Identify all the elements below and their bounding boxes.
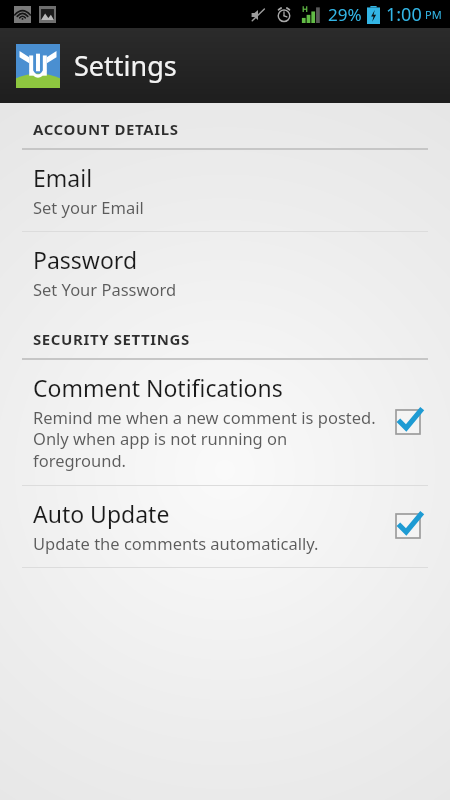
staticText: Email bbox=[33, 162, 93, 193]
staticText: Set Your Password bbox=[33, 278, 177, 300]
button[interactable]: Toggle setting bbox=[388, 506, 428, 546]
staticText: PM bbox=[425, 7, 442, 22]
button[interactable]: Comment Notifications bbox=[0, 360, 450, 485]
staticText: Auto Update bbox=[33, 498, 170, 529]
button[interactable]: Password bbox=[0, 232, 450, 313]
button[interactable]: Email bbox=[0, 150, 450, 231]
staticText: ACCOUNT DETAILS bbox=[33, 119, 179, 139]
staticText: 1:00 bbox=[386, 2, 422, 27]
button[interactable]: Toggle setting bbox=[388, 402, 428, 442]
staticText: Password bbox=[33, 244, 138, 275]
staticText: Comment Notifications bbox=[33, 372, 283, 403]
button[interactable]: Auto Update bbox=[0, 486, 450, 567]
staticText: Update the comments automatically. bbox=[33, 532, 319, 554]
staticText: Settings bbox=[74, 47, 177, 84]
staticText: 29% bbox=[328, 3, 362, 26]
staticText: Set your Email bbox=[33, 196, 144, 218]
staticText: Remind me when a new comment is posted. … bbox=[33, 406, 378, 472]
staticText: SECURITY SETTINGS bbox=[33, 329, 190, 349]
